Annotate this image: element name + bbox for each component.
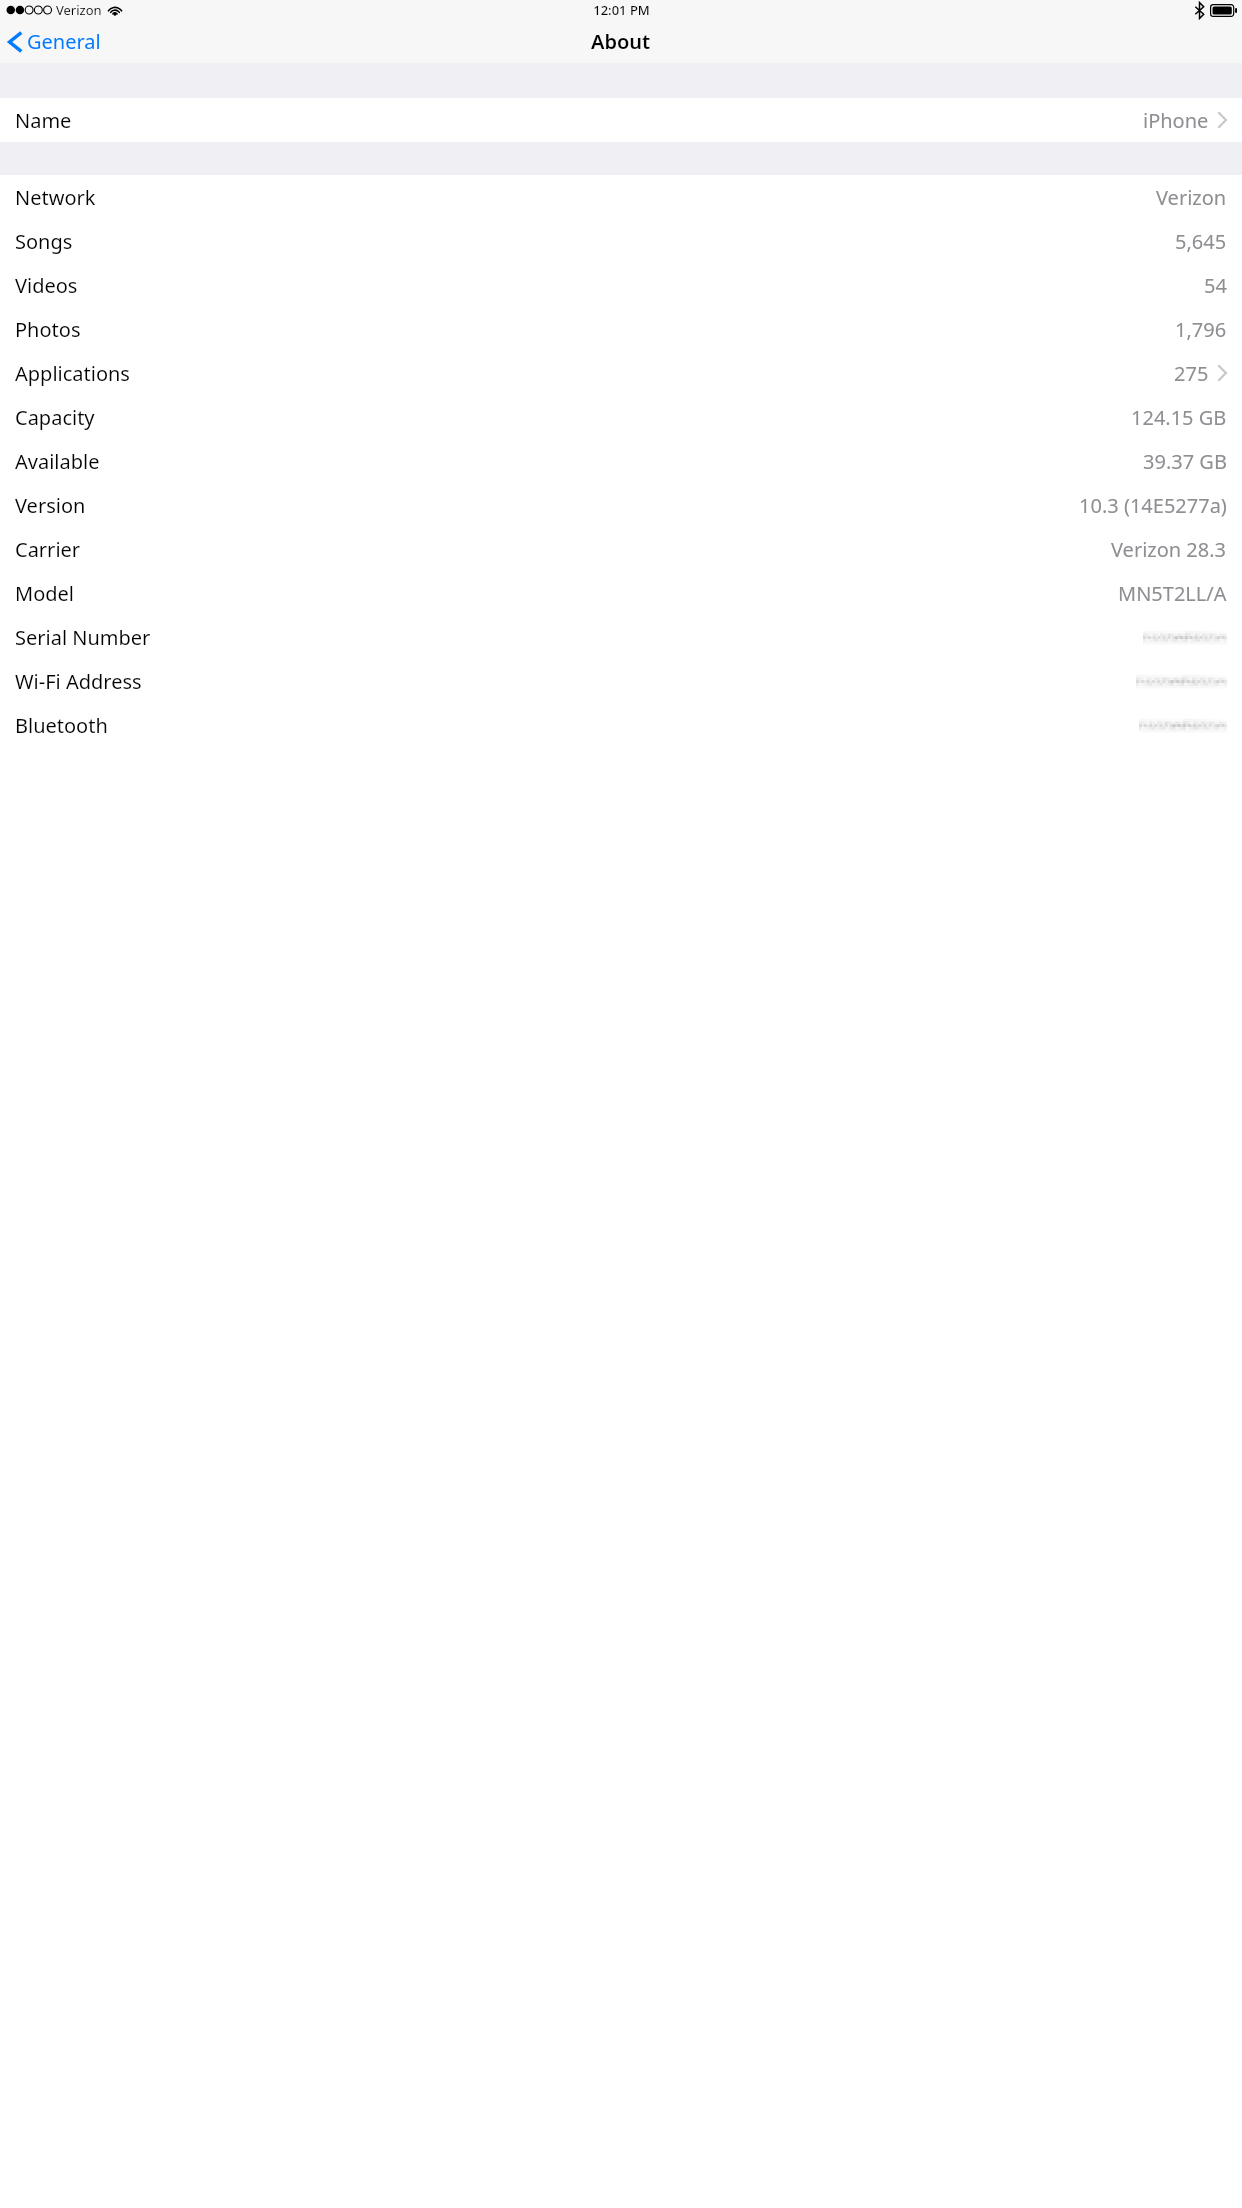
staticText: 12:01 PM (593, 1, 650, 19)
button[interactable]: Available (0, 439, 1242, 483)
button[interactable]: Serial Number (0, 615, 1242, 659)
staticText: 5,645 (1175, 228, 1227, 255)
staticText: 10.3 (14E5277a) (1079, 492, 1227, 519)
staticText: Available (15, 448, 100, 475)
staticText: Photos (15, 316, 81, 343)
staticText: Verizon (1156, 184, 1227, 211)
staticText: Capacity (15, 404, 95, 431)
staticText: Verizon (56, 1, 102, 19)
button[interactable]: Bluetooth (0, 703, 1242, 747)
staticText: 124.15 GB (1131, 404, 1227, 431)
staticText: Verizon 28.3 (1111, 536, 1227, 563)
button[interactable]: Network (0, 175, 1242, 219)
staticText: Version (15, 492, 86, 519)
staticText: Serial Number (15, 624, 151, 651)
button[interactable]: Name (0, 98, 1242, 142)
button[interactable]: Carrier (0, 527, 1242, 571)
button[interactable]: Songs (0, 219, 1242, 263)
staticText: 275 (1174, 360, 1209, 387)
staticText: MN5T2LL/A (1118, 580, 1227, 607)
button[interactable]: Version (0, 483, 1242, 527)
staticText: General (27, 28, 101, 55)
staticText: Bluetooth (15, 712, 108, 739)
button[interactable]: Model (0, 571, 1242, 615)
staticText: Videos (15, 272, 78, 299)
staticText: Wi-Fi Address (15, 668, 142, 695)
staticText: 39.37 GB (1143, 448, 1227, 475)
button[interactable]: Videos (0, 263, 1242, 307)
staticText: 54 (1204, 272, 1227, 299)
staticText: Songs (15, 228, 73, 255)
staticText: Model (15, 580, 74, 607)
staticText: Carrier (15, 536, 81, 563)
staticText: Name (15, 107, 72, 134)
staticText: Network (15, 184, 96, 211)
button[interactable]: General (0, 20, 111, 63)
button[interactable]: Photos (0, 307, 1242, 351)
button[interactable]: Wi-Fi Address (0, 659, 1242, 703)
staticText: iPhone (1143, 107, 1209, 134)
staticText: About (591, 28, 651, 55)
button[interactable]: Capacity (0, 395, 1242, 439)
staticText: 1,796 (1175, 316, 1227, 343)
staticText: Applications (15, 360, 130, 387)
button[interactable]: Applications (0, 351, 1242, 395)
